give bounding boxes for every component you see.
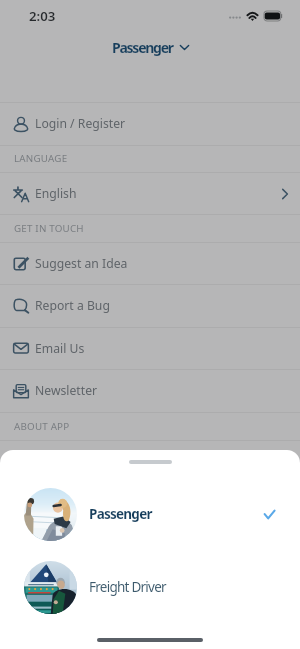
button[interactable]: Passenger — [0, 478, 300, 550]
staticText: 2:03 — [29, 7, 56, 25]
staticText: GET IN TOUCH — [14, 222, 84, 235]
button[interactable]: Login / Register — [0, 102, 300, 145]
staticText: Login / Register — [35, 115, 126, 132]
staticText: Email Us — [35, 340, 85, 357]
button[interactable]: Freight Driver — [0, 551, 300, 623]
staticText: ABOUT APP — [14, 420, 70, 433]
staticText: LANGUAGE — [14, 152, 68, 165]
button[interactable]: Suggest an Idea — [0, 242, 300, 284]
button[interactable]: Email Us — [0, 327, 300, 369]
button[interactable]: Passenger — [112, 38, 189, 57]
button[interactable]: Newsletter — [0, 369, 300, 412]
other: Selected — [264, 510, 275, 519]
staticText: Newsletter — [35, 382, 98, 399]
button[interactable]: English — [0, 172, 300, 215]
staticText: Report a Bug — [35, 297, 110, 314]
staticText: Freight Driver — [89, 578, 166, 596]
staticText: Passenger — [89, 505, 152, 523]
staticText: Suggest an Idea — [35, 255, 128, 272]
staticText: English — [35, 185, 77, 202]
button[interactable]: Report a Bug — [0, 284, 300, 326]
staticText: Passenger — [112, 38, 173, 57]
